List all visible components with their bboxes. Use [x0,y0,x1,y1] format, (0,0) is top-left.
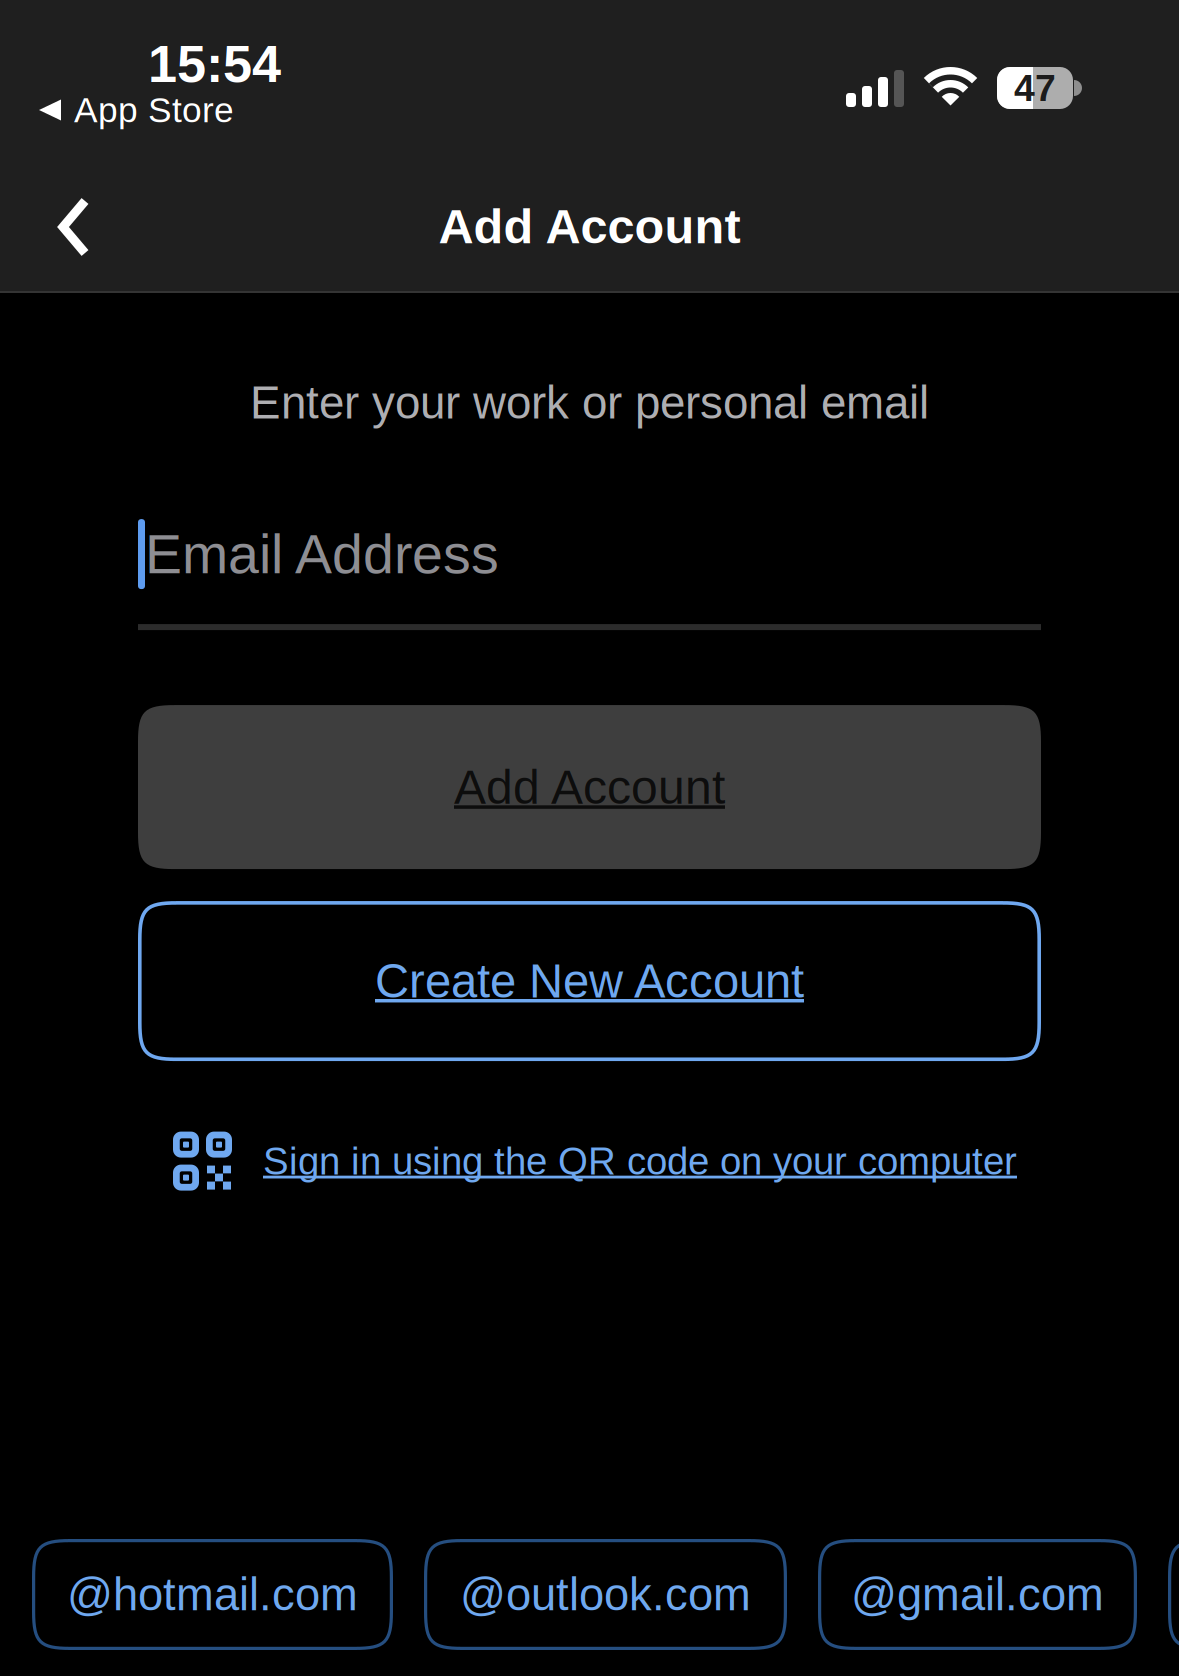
button[interactable]: App Store [39,91,234,129]
staticText: Add Account [454,760,725,814]
staticText: @hotmail.com [67,1569,358,1620]
staticText: @gmail.com [851,1569,1104,1620]
staticText: Add Account [438,199,740,254]
button[interactable]: Back [9,173,122,280]
staticText: Sign in using the QR code on your comput… [263,1140,1017,1182]
staticText: App Store [74,90,234,130]
staticText: 47 [1014,67,1056,109]
button[interactable]: Create New Account [138,901,1041,1061]
button[interactable]: @outlook.com [424,1539,787,1650]
staticText: @outlook.com [460,1569,751,1620]
staticText: 15:54 [148,35,281,93]
button[interactable]: Email Address [138,518,1041,590]
button[interactable]: @icloud.com [1168,1539,1179,1650]
button[interactable]: @gmail.com [818,1539,1137,1650]
staticText: Enter your work or personal email [250,377,929,428]
button[interactable]: @hotmail.com [32,1539,393,1650]
staticText: Create New Account [375,955,804,1007]
staticText: Email Address [145,523,499,585]
button[interactable]: Sign in using the QR code on your comput… [173,1125,1017,1197]
button[interactable]: Add Account [138,705,1041,869]
